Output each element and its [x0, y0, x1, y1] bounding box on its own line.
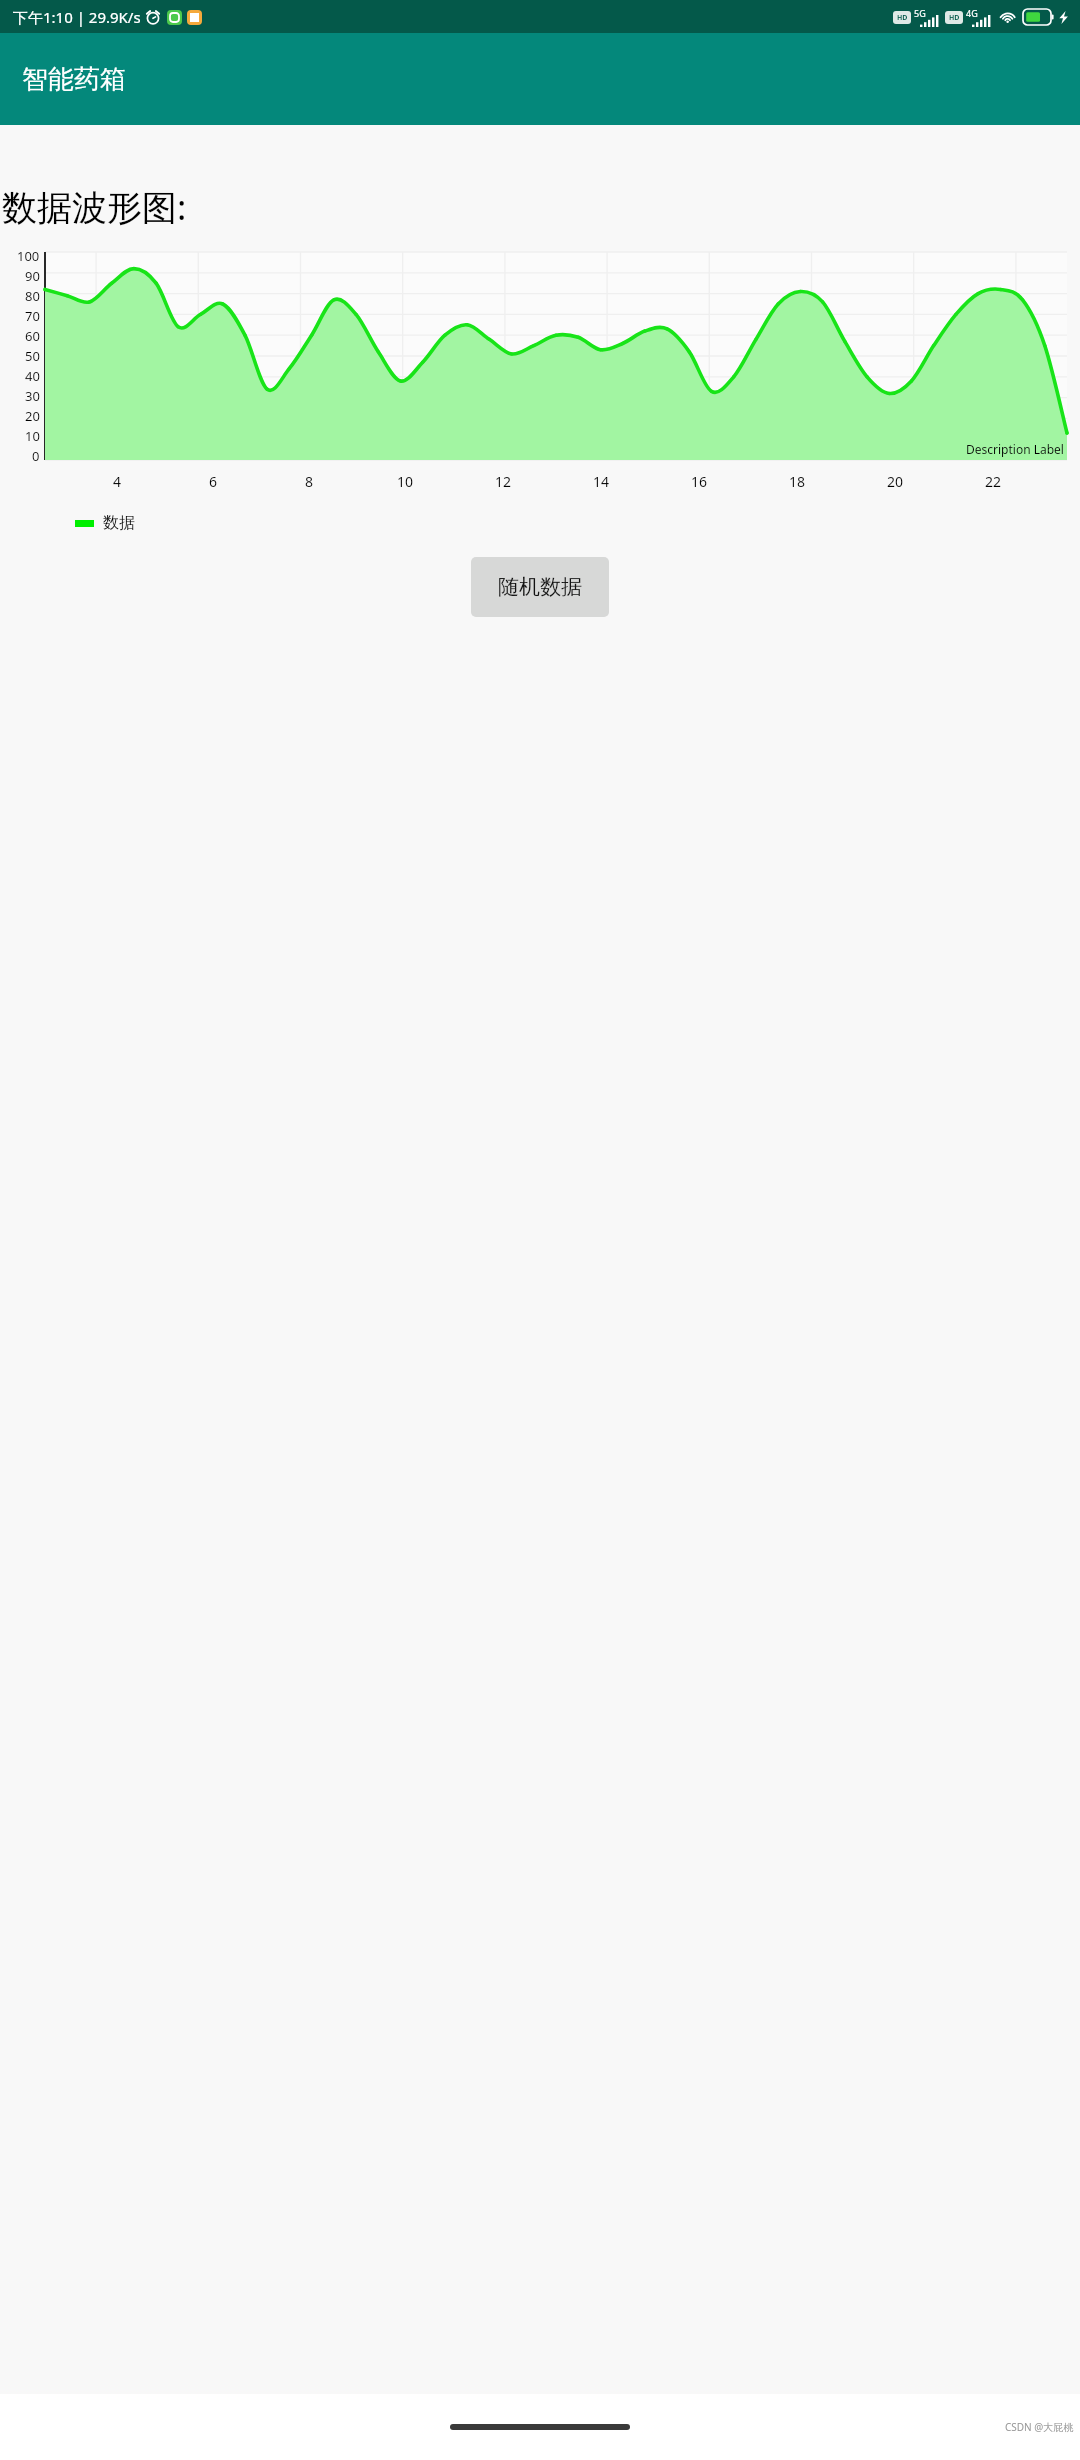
staticText: 18: [789, 472, 806, 491]
staticText: 10: [397, 472, 414, 491]
staticText: 8: [305, 472, 314, 491]
staticText: 60: [25, 327, 40, 345]
staticText: 16: [691, 472, 708, 491]
staticText: 14: [593, 472, 610, 491]
button[interactable]: 随机数据: [471, 557, 609, 617]
staticText: 4: [113, 472, 122, 491]
staticText: 数据: [103, 513, 135, 533]
staticText: 数据波形图:: [2, 183, 187, 231]
staticText: 12: [495, 472, 512, 491]
staticText: Description Label: [966, 441, 1064, 457]
staticText: CSDN @大屁桃: [1005, 2420, 1074, 2434]
staticText: 下午1:10 | 29.9K/s: [13, 7, 141, 27]
staticText: 80: [25, 287, 40, 305]
staticText: 100: [17, 247, 40, 265]
staticText: 20: [887, 472, 904, 491]
staticText: 4G: [966, 7, 978, 19]
staticText: 90: [25, 267, 40, 285]
staticText: 6: [209, 472, 218, 491]
staticText: 22: [985, 472, 1002, 491]
staticText: 20: [25, 407, 40, 425]
staticText: 10: [25, 427, 40, 445]
staticText: 0: [32, 447, 40, 465]
staticText: 30: [25, 387, 40, 405]
staticText: 70: [25, 307, 40, 325]
staticText: 5G: [914, 7, 926, 19]
staticText: HD: [897, 13, 908, 23]
staticText: HD: [949, 13, 960, 23]
staticText: 随机数据: [498, 574, 582, 600]
staticText: 40: [25, 367, 40, 385]
staticText: 智能药箱: [22, 63, 126, 96]
staticText: 50: [25, 347, 40, 365]
